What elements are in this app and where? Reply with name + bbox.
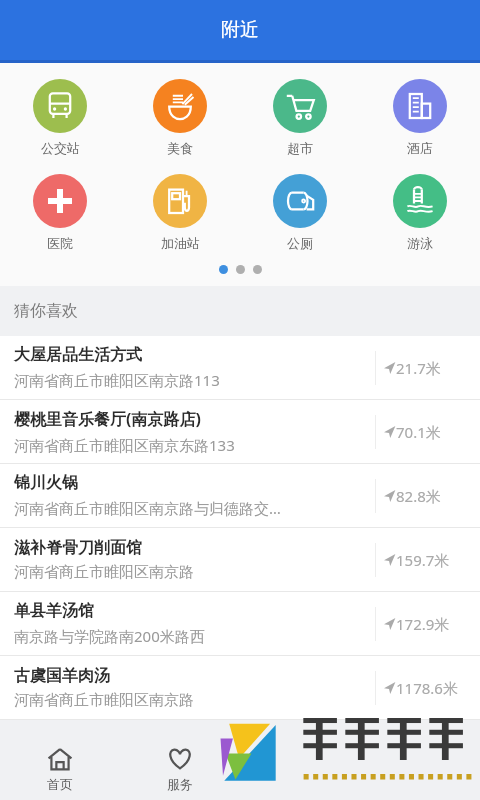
staticText: 美食 xyxy=(167,140,193,156)
staticText: 医院 xyxy=(47,235,73,251)
staticText: 古虞国羊肉汤 xyxy=(14,666,110,686)
button[interactable]: 加油站 xyxy=(120,170,240,255)
staticText: 河南省商丘市睢阳区南京路 xyxy=(14,563,194,582)
other: 服务 xyxy=(167,746,193,772)
staticText: 河南省商丘市睢阳区南京路113 xyxy=(14,370,220,390)
staticText: 服务 xyxy=(167,776,193,792)
staticText: 首页 xyxy=(47,776,73,792)
button[interactable]: 单县羊汤馆 xyxy=(0,592,480,655)
button[interactable]: 首页 xyxy=(0,738,120,800)
button[interactable]: 公交站 xyxy=(0,75,120,160)
staticText: 公交站 xyxy=(41,140,80,156)
button[interactable]: 超市 xyxy=(240,75,360,160)
staticText: 附近 xyxy=(221,18,259,42)
staticText: 单县羊汤馆 xyxy=(14,601,94,621)
button[interactable]: 锦川火锅 xyxy=(0,464,480,527)
staticText: 82.8米 xyxy=(396,486,441,506)
staticText: 159.7米 xyxy=(396,550,450,570)
other: 首页 xyxy=(47,746,73,772)
staticText: 70.1米 xyxy=(396,422,441,442)
button[interactable]: 公厕 xyxy=(240,170,360,255)
button[interactable]: 美食 xyxy=(120,75,240,160)
staticText: 酒店 xyxy=(407,140,433,156)
staticText: 锦川火锅 xyxy=(14,473,78,493)
button[interactable]: 游泳 xyxy=(360,170,480,255)
staticText: 大屋居品生活方式 xyxy=(14,345,142,365)
button[interactable]: 樱桃里音乐餐厅(南京路店) xyxy=(0,400,480,463)
staticText: 加油站 xyxy=(161,235,200,251)
staticText: 河南省商丘市睢阳区南京路与归德路交… xyxy=(14,498,281,518)
staticText: 公厕 xyxy=(287,235,313,251)
staticText: 河南省商丘市睢阳区南京路 xyxy=(14,691,194,710)
staticText: 樱桃里音乐餐厅(南京路店) xyxy=(14,408,201,430)
button[interactable]: 古虞国羊肉汤 xyxy=(0,656,480,719)
staticText: 超市 xyxy=(287,140,313,156)
staticText: 游泳 xyxy=(407,235,433,251)
button[interactable]: 酒店 xyxy=(360,75,480,160)
staticText: 河南省商丘市睢阳区南京东路133 xyxy=(14,435,235,455)
button[interactable]: 医院 xyxy=(0,170,120,255)
staticText: 滋补脊骨刀削面馆 xyxy=(14,538,142,558)
button[interactable]: 服务 xyxy=(120,738,240,800)
staticText: 南京路与学院路南200米路西 xyxy=(14,626,205,646)
button[interactable]: 滋补脊骨刀削面馆 xyxy=(0,528,480,591)
staticText: 猜你喜欢 xyxy=(14,301,78,321)
staticText: 21.7米 xyxy=(396,358,441,378)
button[interactable]: 大屋居品生活方式 xyxy=(0,336,480,399)
staticText: 1178.6米 xyxy=(396,678,458,698)
staticText: 172.9米 xyxy=(396,614,450,634)
